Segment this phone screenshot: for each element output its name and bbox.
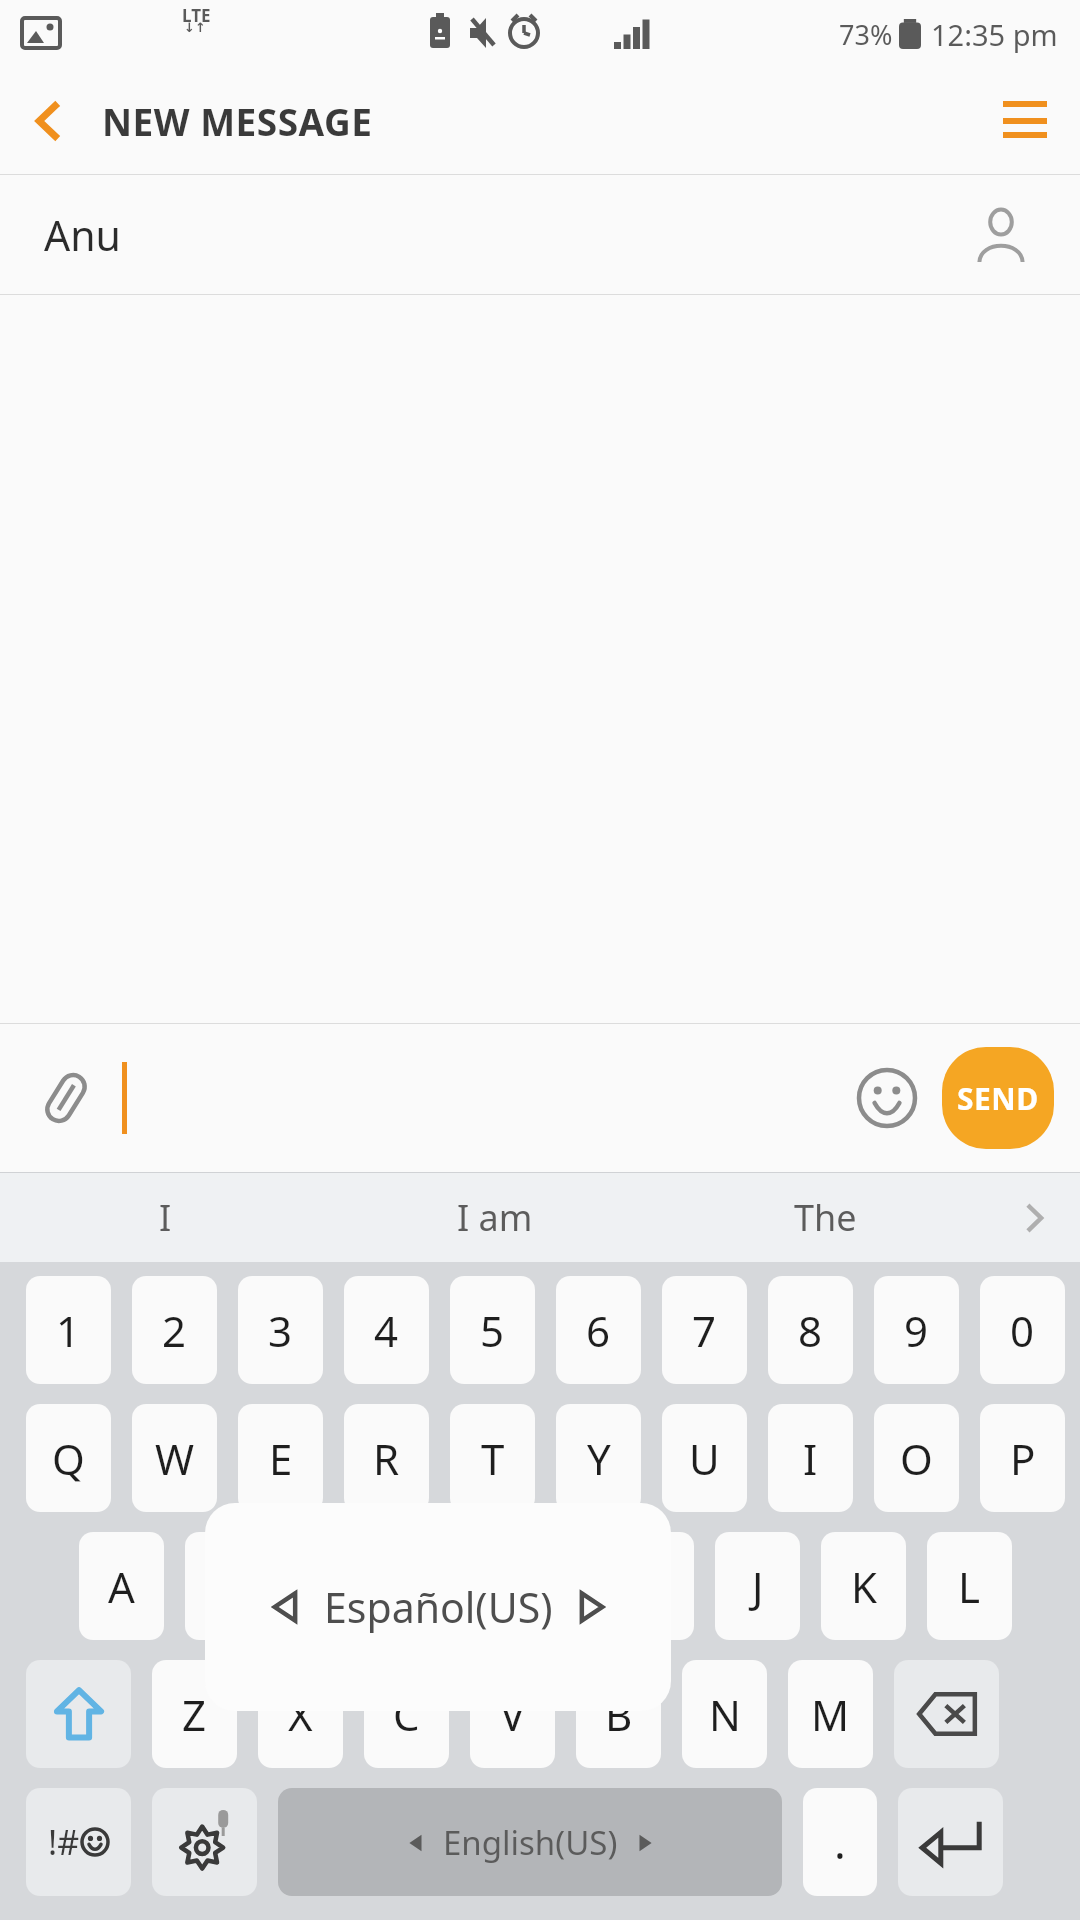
staticText: 0 <box>1010 1302 1035 1359</box>
button[interactable]: X <box>258 1660 343 1768</box>
staticText: !# <box>48 1819 80 1865</box>
button[interactable]: R <box>344 1404 429 1512</box>
staticText: O <box>900 1430 933 1487</box>
button[interactable]: Enter <box>898 1788 1003 1896</box>
button[interactable]: N <box>682 1660 767 1768</box>
button[interactable]: SEND <box>942 1047 1054 1149</box>
staticText: 2 <box>162 1302 187 1359</box>
button[interactable]: 1 <box>26 1276 111 1384</box>
button[interactable]: U <box>662 1404 747 1512</box>
button[interactable]: 9 <box>874 1276 959 1384</box>
staticText: Q <box>52 1430 85 1487</box>
button[interactable]: G <box>503 1532 588 1640</box>
staticText: F <box>429 1558 451 1615</box>
button[interactable]: T <box>450 1404 535 1512</box>
button[interactable]: K <box>821 1532 906 1640</box>
button[interactable]: English(US) <box>278 1788 782 1896</box>
staticText: SEND <box>957 1078 1039 1119</box>
staticText: Z <box>182 1686 207 1743</box>
staticText: M <box>811 1686 850 1743</box>
staticText: 8 <box>798 1302 823 1359</box>
staticText: 73% <box>839 16 893 53</box>
button[interactable]: C <box>364 1660 449 1768</box>
button[interactable]: Backspace <box>894 1660 999 1768</box>
staticText: 4 <box>374 1302 399 1359</box>
staticText: A <box>108 1558 135 1615</box>
button[interactable]: D <box>291 1532 376 1640</box>
button[interactable]: 5 <box>450 1276 535 1384</box>
button[interactable]: Español(US) <box>205 1503 671 1711</box>
staticText: C <box>393 1686 420 1743</box>
button[interactable]: W <box>132 1404 217 1512</box>
button[interactable]: !# <box>26 1788 131 1896</box>
staticText: 3 <box>268 1302 293 1359</box>
button[interactable]: The <box>660 1173 990 1262</box>
button[interactable]: 3 <box>238 1276 323 1384</box>
button[interactable]: More options <box>970 68 1080 174</box>
button[interactable]: A <box>79 1532 164 1640</box>
button[interactable]: 8 <box>768 1276 853 1384</box>
staticText: E <box>269 1430 293 1487</box>
button[interactable]: P <box>980 1404 1065 1512</box>
staticText: X <box>288 1686 313 1743</box>
staticText: K <box>851 1558 877 1615</box>
button[interactable]: Anu <box>0 175 1080 294</box>
button[interactable]: 4 <box>344 1276 429 1384</box>
button[interactable]: 6 <box>556 1276 641 1384</box>
button[interactable]: Z <box>152 1660 237 1768</box>
staticText: B <box>605 1686 633 1743</box>
staticText: U <box>689 1430 720 1487</box>
staticText: I <box>159 1193 172 1242</box>
staticText: P <box>1010 1430 1036 1487</box>
button[interactable]: 2 <box>132 1276 217 1384</box>
staticText: J <box>752 1558 764 1615</box>
button[interactable]: S <box>185 1532 270 1640</box>
button[interactable]: Back <box>0 68 96 174</box>
button[interactable]: . <box>803 1788 877 1896</box>
staticText: N <box>709 1686 741 1743</box>
button[interactable]: H <box>609 1532 694 1640</box>
staticText: 9 <box>904 1302 929 1359</box>
staticText: English(US) <box>443 1820 618 1865</box>
button[interactable]: Q <box>26 1404 111 1512</box>
button[interactable]: L <box>927 1532 1012 1640</box>
button[interactable]: 7 <box>662 1276 747 1384</box>
staticText: G <box>530 1558 561 1615</box>
staticText: 5 <box>480 1302 505 1359</box>
button[interactable]: F <box>397 1532 482 1640</box>
button[interactable]: Y <box>556 1404 641 1512</box>
button[interactable]: Emoji <box>844 1055 930 1141</box>
staticText: I am <box>457 1193 533 1242</box>
staticText: ↓↑ <box>184 20 206 35</box>
staticText: T <box>481 1430 505 1487</box>
staticText: NEW MESSAGE <box>102 96 373 146</box>
staticText: Español(US) <box>324 1579 553 1635</box>
button[interactable]: Keyboard settings <box>152 1788 257 1896</box>
button[interactable]: O <box>874 1404 959 1512</box>
button[interactable]: I am <box>330 1173 660 1262</box>
staticText: Y <box>587 1430 611 1487</box>
button[interactable]: Attach <box>26 1058 106 1138</box>
button[interactable]: More suggestions <box>990 1173 1080 1262</box>
button[interactable]: I <box>0 1173 330 1262</box>
button[interactable]: J <box>715 1532 800 1640</box>
staticText: The <box>794 1193 857 1242</box>
staticText: . <box>834 1812 846 1872</box>
button[interactable]: M <box>788 1660 873 1768</box>
staticText: L <box>958 1558 981 1615</box>
staticText: R <box>373 1430 400 1487</box>
staticText: W <box>155 1430 195 1487</box>
button[interactable]: Add recipient from contacts <box>966 200 1036 270</box>
staticText: Anu <box>44 207 121 263</box>
staticText: 12:35 pm <box>931 15 1058 54</box>
button[interactable]: E <box>238 1404 323 1512</box>
button[interactable]: B <box>576 1660 661 1768</box>
button[interactable]: V <box>470 1660 555 1768</box>
staticText: 6 <box>586 1302 611 1359</box>
button[interactable]: I <box>768 1404 853 1512</box>
button[interactable]: Shift <box>26 1660 131 1768</box>
staticText: D <box>318 1558 349 1615</box>
button[interactable]: 0 <box>980 1276 1065 1384</box>
staticText: LTE <box>182 4 211 27</box>
